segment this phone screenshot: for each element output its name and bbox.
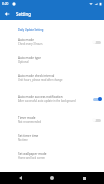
button[interactable]: Toggle off [91, 115, 103, 125]
staticText: Set wallpaper mode [18, 152, 47, 156]
staticText: Timer mode [18, 116, 36, 120]
staticText: Auto mode success notification [18, 95, 63, 99]
staticText: After successful auto update in the back… [18, 99, 76, 103]
button[interactable]: Back [2, 9, 12, 19]
staticText: Unit hours, please read after change [18, 78, 63, 82]
button[interactable]: Recent apps [72, 172, 96, 184]
button[interactable]: Auto mode type [0, 51, 104, 69]
staticText: Optional [18, 60, 29, 64]
staticText: Not recommended [18, 120, 42, 124]
staticText: Daily Update Setting [18, 28, 44, 32]
staticText: Auto mode type [18, 56, 41, 60]
staticText: No time [18, 138, 28, 142]
button[interactable]: Back [8, 172, 32, 184]
button[interactable]: Auto mode [0, 33, 104, 51]
staticText: Set timer time [18, 134, 39, 138]
staticText: Auto mode [18, 38, 34, 42]
button[interactable]: Toggle off [91, 37, 103, 47]
button[interactable]: Home [40, 172, 64, 184]
button[interactable]: Toggle on [91, 94, 103, 104]
staticText: 8:20 [2, 2, 9, 6]
button[interactable]: Auto mode success notification [0, 87, 104, 111]
button[interactable]: Timer mode [0, 111, 104, 129]
button[interactable]: Set wallpaper mode [0, 147, 104, 165]
staticText: Setting [16, 11, 31, 17]
staticText: Check every 3 hours [18, 42, 43, 46]
button[interactable]: Set timer time [0, 129, 104, 147]
staticText: Home and lock screen [18, 156, 45, 160]
staticText: Auto mode check interval [18, 74, 55, 78]
button[interactable]: Auto mode check interval [0, 69, 104, 87]
